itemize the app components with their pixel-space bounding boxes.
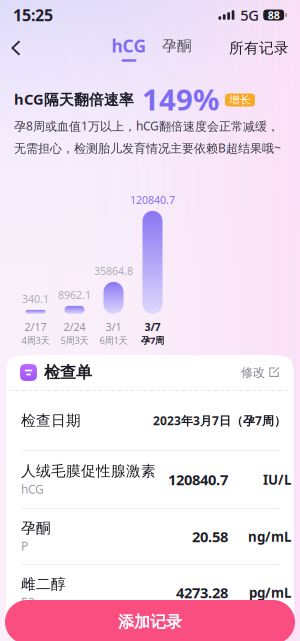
- staticText: 8962.1: [58, 288, 91, 302]
- staticText: 2/24: [63, 320, 85, 334]
- staticText: 35864.8: [94, 264, 133, 278]
- staticText: 88: [268, 8, 280, 22]
- staticText: 检查日期: [21, 411, 81, 429]
- staticText: 120840.7: [130, 193, 175, 207]
- staticText: 无需担心，检测胎儿发育情况主要依赖B超结果哦~: [14, 140, 281, 156]
- staticText: 20.58: [192, 527, 228, 546]
- staticText: 孕酮: [21, 519, 51, 537]
- staticText: 人绒毛膜促性腺激素: [21, 462, 156, 480]
- staticText: 5G: [240, 5, 259, 25]
- button[interactable]: 修改: [241, 355, 280, 389]
- staticText: 孕8周或血值1万以上，hCG翻倍速度会正常减缓，: [14, 118, 279, 134]
- staticText: 5周3天: [60, 334, 88, 346]
- staticText: 3/7: [144, 320, 160, 334]
- staticText: 雌二醇: [21, 575, 66, 593]
- staticText: 4周3天: [21, 334, 49, 346]
- staticText: 149%: [142, 79, 219, 118]
- staticText: 2/17: [24, 320, 46, 334]
- staticText: 3/1: [105, 320, 121, 334]
- staticText: E2: [21, 594, 35, 610]
- staticText: ng/mL: [248, 528, 291, 545]
- staticText: 孕7周: [141, 334, 164, 346]
- button[interactable]: hCG: [108, 31, 150, 65]
- staticText: hCG: [111, 34, 146, 57]
- staticText: 孕酮: [162, 37, 192, 55]
- button[interactable]: Back: [2, 31, 30, 65]
- staticText: 4273.28: [176, 583, 228, 602]
- button[interactable]: 孕酮: [160, 31, 194, 65]
- staticText: 2023年3月7日（孕7周）: [153, 412, 286, 428]
- staticText: 120840.7: [168, 470, 228, 489]
- staticText: 340.1: [22, 292, 49, 306]
- staticText: 添加记录: [118, 612, 182, 632]
- button[interactable]: 所有记录: [229, 31, 289, 65]
- staticText: hCG隔天翻倍速率: [14, 89, 134, 109]
- staticText: 增长: [229, 93, 251, 106]
- staticText: hCG: [21, 481, 44, 497]
- staticText: P: [21, 538, 28, 554]
- staticText: IU/L: [263, 471, 291, 488]
- staticText: pg/mL: [249, 584, 291, 601]
- staticText: 检查单: [44, 363, 92, 382]
- button[interactable]: 添加记录: [5, 600, 295, 641]
- staticText: 所有记录: [229, 39, 289, 57]
- staticText: 15:25: [13, 4, 53, 26]
- staticText: 修改: [241, 365, 265, 380]
- staticText: 6周1天: [99, 334, 127, 346]
